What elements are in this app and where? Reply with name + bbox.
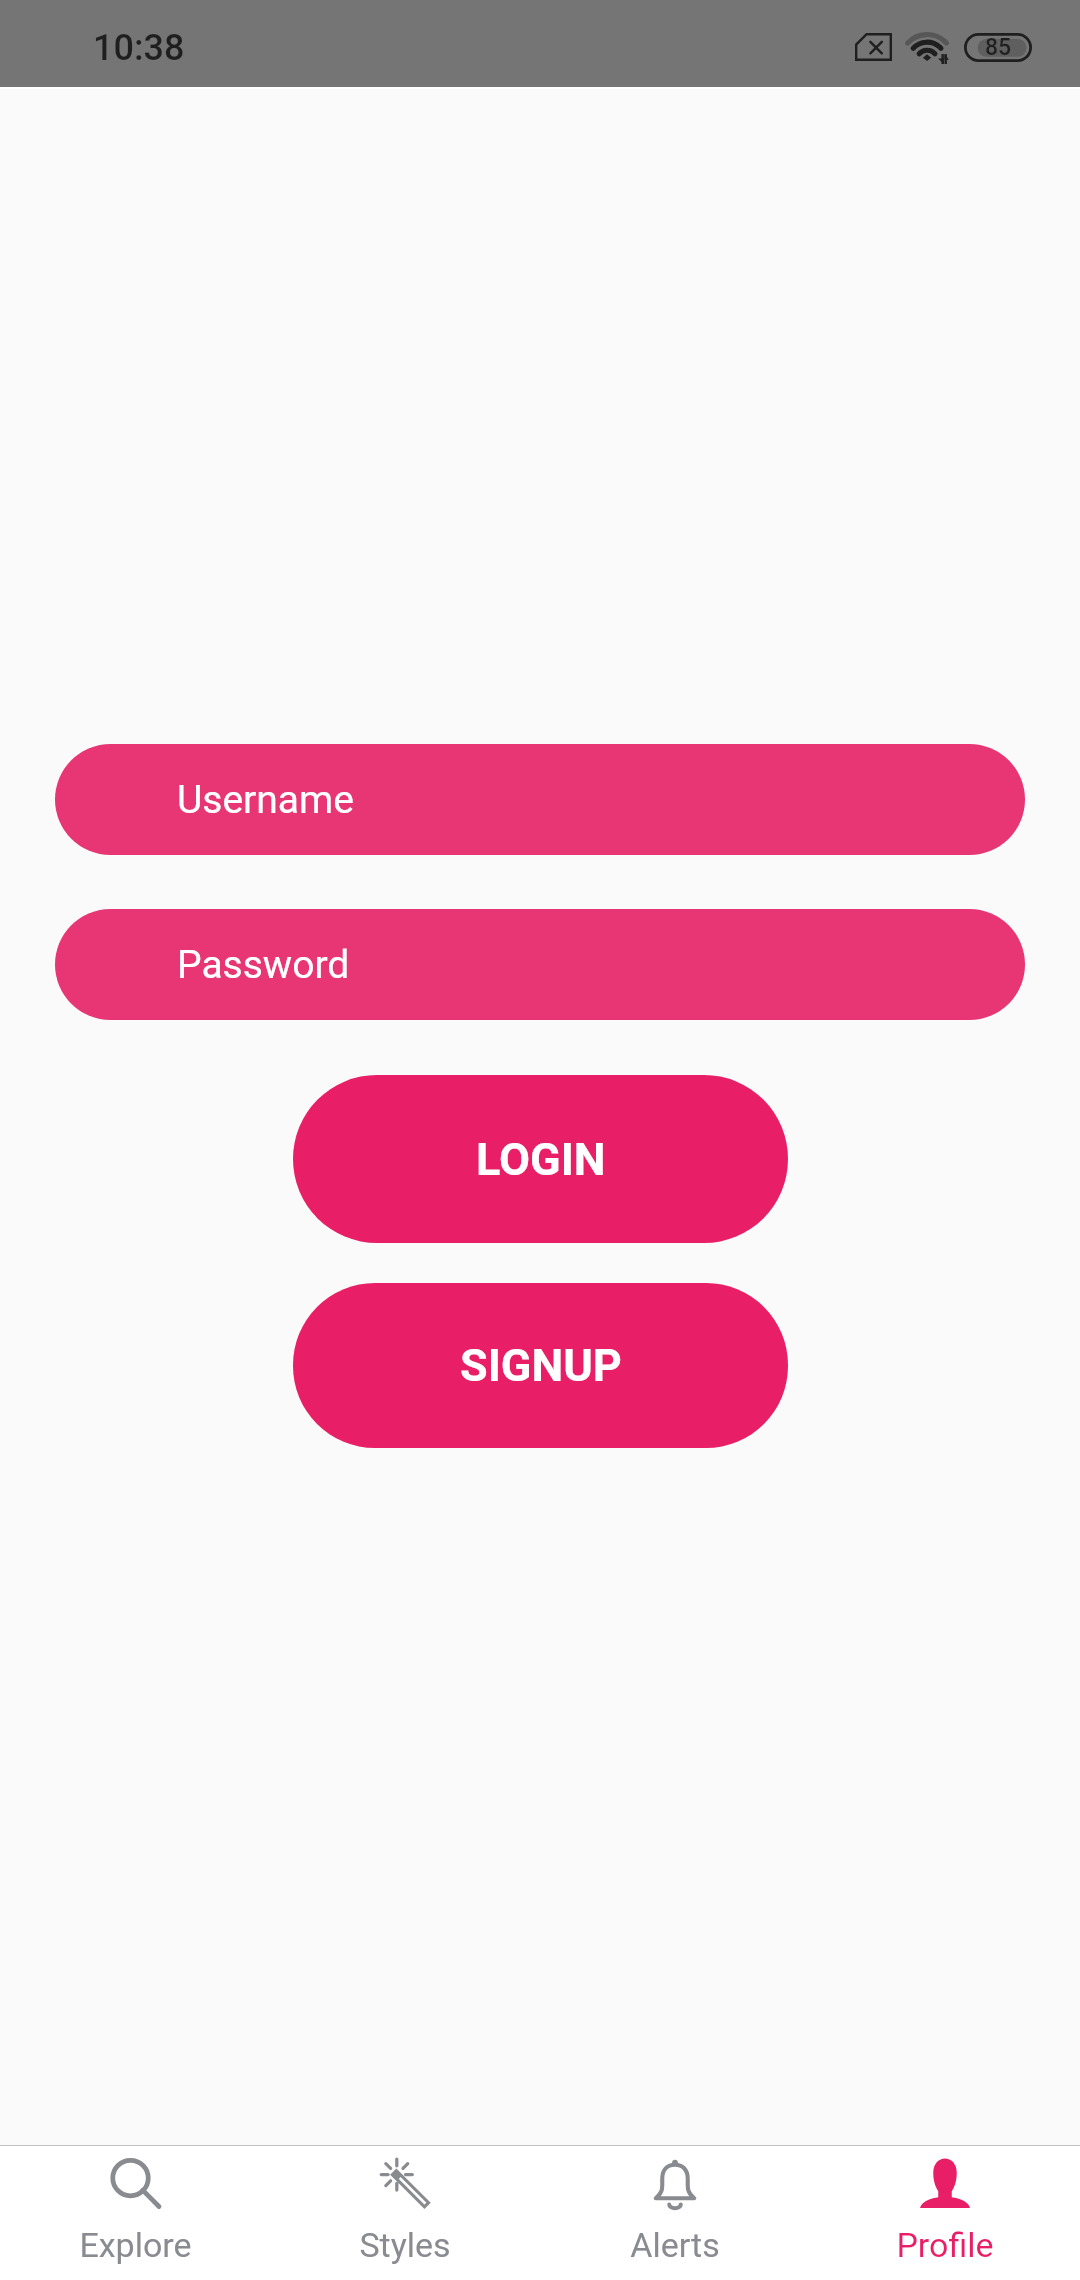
staticText: 10:38 (93, 27, 185, 69)
other: Styles (380, 2158, 430, 2208)
staticText: Profile (896, 2225, 994, 2265)
staticText: Password (177, 942, 350, 988)
staticText: Explore (79, 2225, 192, 2265)
staticText: LOGIN (476, 1133, 606, 1186)
other: Alerts (650, 2158, 700, 2208)
button[interactable]: Password (55, 909, 1025, 1020)
button[interactable]: Username (55, 744, 1025, 855)
button[interactable]: Profile (810, 2146, 1080, 2280)
other: Explore (111, 2158, 161, 2208)
staticText: Alerts (630, 2225, 720, 2265)
button[interactable]: Alerts (540, 2146, 810, 2280)
button[interactable]: SIGNUP (293, 1283, 788, 1448)
staticText: SIGNUP (460, 1339, 622, 1392)
staticText: Username (177, 777, 354, 823)
staticText: Styles (359, 2225, 451, 2265)
button[interactable]: Styles (270, 2146, 540, 2280)
button[interactable]: Explore (0, 2146, 270, 2280)
staticText: 85 (985, 34, 1012, 61)
other: Profile (920, 2158, 970, 2208)
button[interactable]: LOGIN (293, 1075, 788, 1243)
